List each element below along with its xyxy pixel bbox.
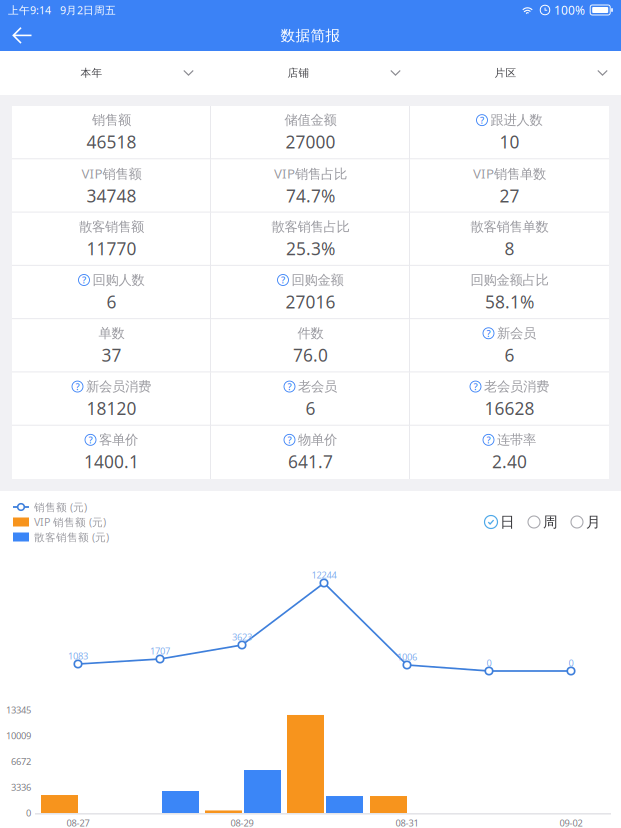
- staticText: 27: [499, 184, 519, 207]
- staticText: 0: [26, 807, 31, 819]
- staticText: 1707: [150, 645, 170, 657]
- staticText: 100%: [554, 2, 585, 18]
- staticText: 11770: [86, 237, 136, 260]
- staticText: VIP销售单数: [473, 164, 546, 182]
- staticText: VIP 销售额 (元): [34, 515, 106, 529]
- staticText: ?: [82, 274, 86, 286]
- staticText: 6: [305, 397, 315, 420]
- button[interactable]: 返回: [0, 20, 56, 51]
- staticText: 0: [486, 657, 491, 669]
- staticText: 日: [500, 513, 515, 531]
- staticText: 物单价: [298, 432, 337, 448]
- staticText: ?: [75, 380, 79, 393]
- staticText: 散客销售额: [79, 218, 144, 235]
- staticText: 58.1%: [485, 290, 534, 313]
- button[interactable]: 店铺: [207, 51, 414, 95]
- staticText: 月: [586, 513, 601, 531]
- staticText: 10: [499, 130, 519, 153]
- button[interactable]: 片区: [414, 51, 621, 95]
- staticText: ?: [281, 274, 285, 286]
- staticText: 新会员: [497, 325, 536, 341]
- staticText: 09-02: [559, 817, 582, 828]
- staticText: 27016: [285, 290, 335, 313]
- staticText: 回购金额占比: [470, 272, 548, 288]
- staticText: 12244: [311, 569, 336, 581]
- staticText: 16628: [484, 397, 534, 420]
- staticText: 散客销售额 (元): [34, 530, 109, 544]
- staticText: 1083: [68, 650, 88, 662]
- staticText: 散客销售单数: [470, 218, 548, 235]
- staticText: 1400.1: [84, 450, 139, 473]
- staticText: 客单价: [99, 432, 138, 448]
- staticText: 34748: [86, 184, 136, 207]
- staticText: 3623: [232, 631, 252, 643]
- staticText: VIP销售占比: [274, 164, 347, 182]
- staticText: ?: [486, 434, 490, 446]
- staticText: 08-31: [395, 817, 418, 828]
- staticText: 6: [106, 290, 116, 313]
- staticText: 销售额: [92, 112, 131, 128]
- staticText: 单数: [98, 325, 124, 341]
- staticText: 18120: [86, 397, 136, 420]
- staticText: 6672: [11, 755, 31, 768]
- staticText: 13345: [6, 704, 31, 716]
- staticText: 新会员消费: [86, 378, 151, 395]
- staticText: 08-29: [230, 817, 253, 828]
- staticText: 回购人数: [92, 272, 144, 288]
- staticText: ?: [287, 380, 291, 393]
- staticText: 37: [101, 343, 121, 366]
- staticText: 1006: [397, 651, 417, 663]
- button[interactable]: 日: [484, 512, 515, 532]
- staticText: 连带率: [497, 432, 536, 448]
- staticText: 销售额 (元): [34, 500, 87, 514]
- staticText: ?: [480, 114, 484, 126]
- staticText: 老会员: [298, 378, 337, 395]
- staticText: 储值金额: [284, 112, 336, 128]
- staticText: ?: [473, 380, 477, 393]
- staticText: 周: [543, 513, 558, 531]
- staticText: 跟进人数: [490, 112, 542, 128]
- staticText: 本年: [80, 66, 102, 79]
- staticText: 片区: [494, 66, 516, 79]
- staticText: 回购金额: [291, 272, 343, 288]
- staticText: 6: [504, 343, 514, 366]
- button[interactable]: 月: [570, 512, 601, 532]
- staticText: 10009: [6, 730, 31, 742]
- staticText: 8: [504, 237, 514, 260]
- staticText: 散客销售占比: [271, 218, 349, 235]
- staticText: 数据简报: [280, 26, 340, 44]
- staticText: VIP销售额: [81, 164, 141, 182]
- staticText: ?: [287, 434, 291, 446]
- staticText: 46518: [86, 130, 136, 153]
- staticText: 0: [568, 657, 573, 669]
- staticText: 27000: [285, 130, 335, 153]
- button[interactable]: 周: [527, 512, 558, 532]
- staticText: 641.7: [288, 450, 333, 473]
- staticText: 老会员消费: [484, 378, 549, 395]
- staticText: 25.3%: [286, 237, 335, 260]
- staticText: 店铺: [287, 66, 309, 79]
- staticText: ?: [88, 434, 92, 446]
- staticText: 76.0: [293, 343, 328, 366]
- staticText: ?: [486, 327, 490, 339]
- button[interactable]: 本年: [0, 51, 207, 95]
- staticText: 08-27: [66, 817, 89, 828]
- staticText: 2.40: [492, 450, 527, 473]
- staticText: 74.7%: [286, 184, 335, 207]
- staticText: 件数: [297, 325, 323, 341]
- staticText: 上午9:14 9月2日周五: [8, 3, 116, 17]
- staticText: 3336: [11, 781, 31, 793]
